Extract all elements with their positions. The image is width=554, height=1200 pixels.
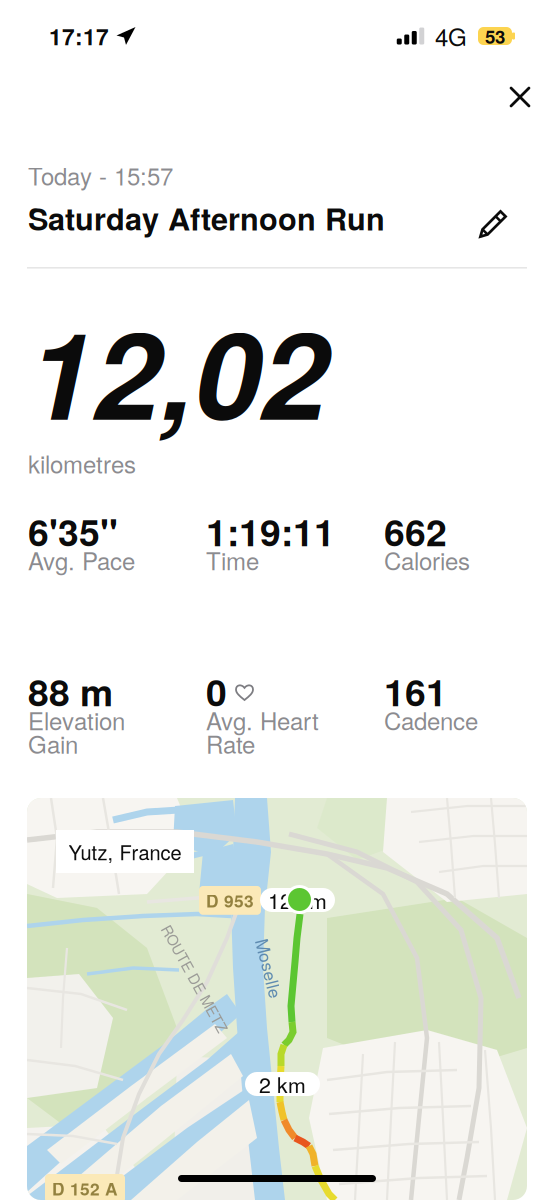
staticText: Gain: [28, 726, 78, 761]
staticText: 662: [384, 504, 447, 558]
staticText: 161: [384, 664, 447, 718]
staticText: Today - 15:57: [28, 158, 173, 192]
staticText: Time: [206, 543, 259, 577]
staticText: 53: [485, 23, 505, 49]
staticText: D 953: [206, 888, 254, 913]
staticText: 17:17: [49, 20, 109, 52]
staticText: D 152 A: [52, 1176, 118, 1200]
staticText: 88 m: [28, 664, 113, 718]
staticText: 12 km: [268, 885, 327, 915]
staticText: kilometres: [28, 446, 136, 480]
staticText: 4G: [435, 19, 467, 53]
staticText: 12,02: [27, 285, 328, 457]
staticText: Cadence: [384, 703, 478, 737]
staticText: Elevation: [28, 703, 125, 737]
staticText: Yutz, France: [68, 837, 181, 866]
staticText: 2 km: [259, 1069, 306, 1099]
staticText: Avg. Pace: [28, 543, 135, 577]
button[interactable]: Close: [493, 70, 547, 124]
staticText: Rate: [206, 726, 255, 761]
staticText: ROUTE DE METZ: [135, 968, 255, 989]
button[interactable]: Edit: [469, 200, 517, 248]
staticText: Calories: [384, 543, 470, 577]
staticText: Saturday Afternoon Run: [28, 196, 385, 240]
staticText: 1:19:11: [206, 504, 335, 558]
staticText: Avg. Heart: [206, 703, 319, 737]
staticText: Moselle: [239, 956, 300, 981]
staticText: 6'35'': [28, 504, 118, 558]
staticText: 0: [206, 664, 227, 718]
